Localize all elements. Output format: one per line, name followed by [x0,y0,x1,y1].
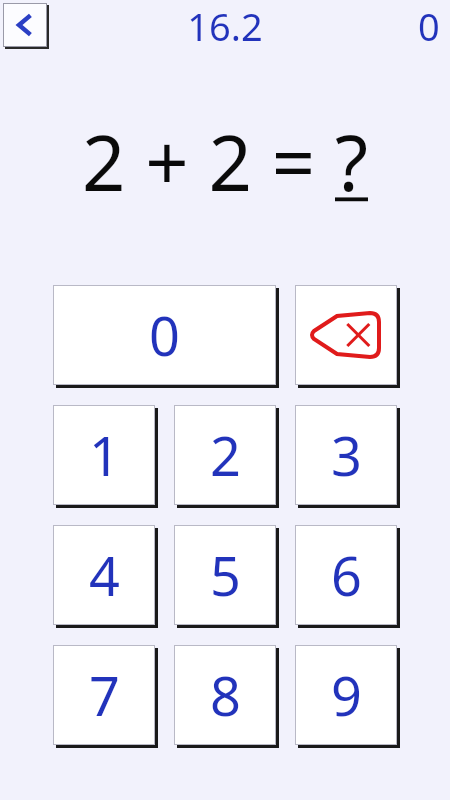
staticText: ? [335,110,368,210]
button[interactable]: 3 [295,405,397,505]
button[interactable]: 5 [174,525,276,625]
button[interactable]: 8 [174,645,276,745]
staticText: 4 [89,538,120,612]
staticText: 9 [331,658,362,732]
button[interactable]: 1 [53,405,155,505]
staticText: 0 [149,298,180,372]
staticText: 7 [89,658,120,732]
staticText: 1 [89,418,120,492]
button[interactable]: 9 [295,645,397,745]
button[interactable]: Back [3,3,47,47]
button[interactable]: 7 [53,645,155,745]
staticText: 2 [210,418,241,492]
staticText: 5 [210,538,241,612]
staticText: 3 [331,418,362,492]
staticText: 8 [210,658,241,732]
button[interactable]: 6 [295,525,397,625]
button[interactable]: 2 [174,405,276,505]
staticText: 2 + 2 = [82,110,335,210]
staticText: 6 [331,538,362,612]
staticText: 0 [418,0,440,52]
staticText: 16.2 [187,0,263,52]
button[interactable] [295,285,397,385]
button[interactable]: 4 [53,525,155,625]
button[interactable]: 0 [53,285,276,385]
